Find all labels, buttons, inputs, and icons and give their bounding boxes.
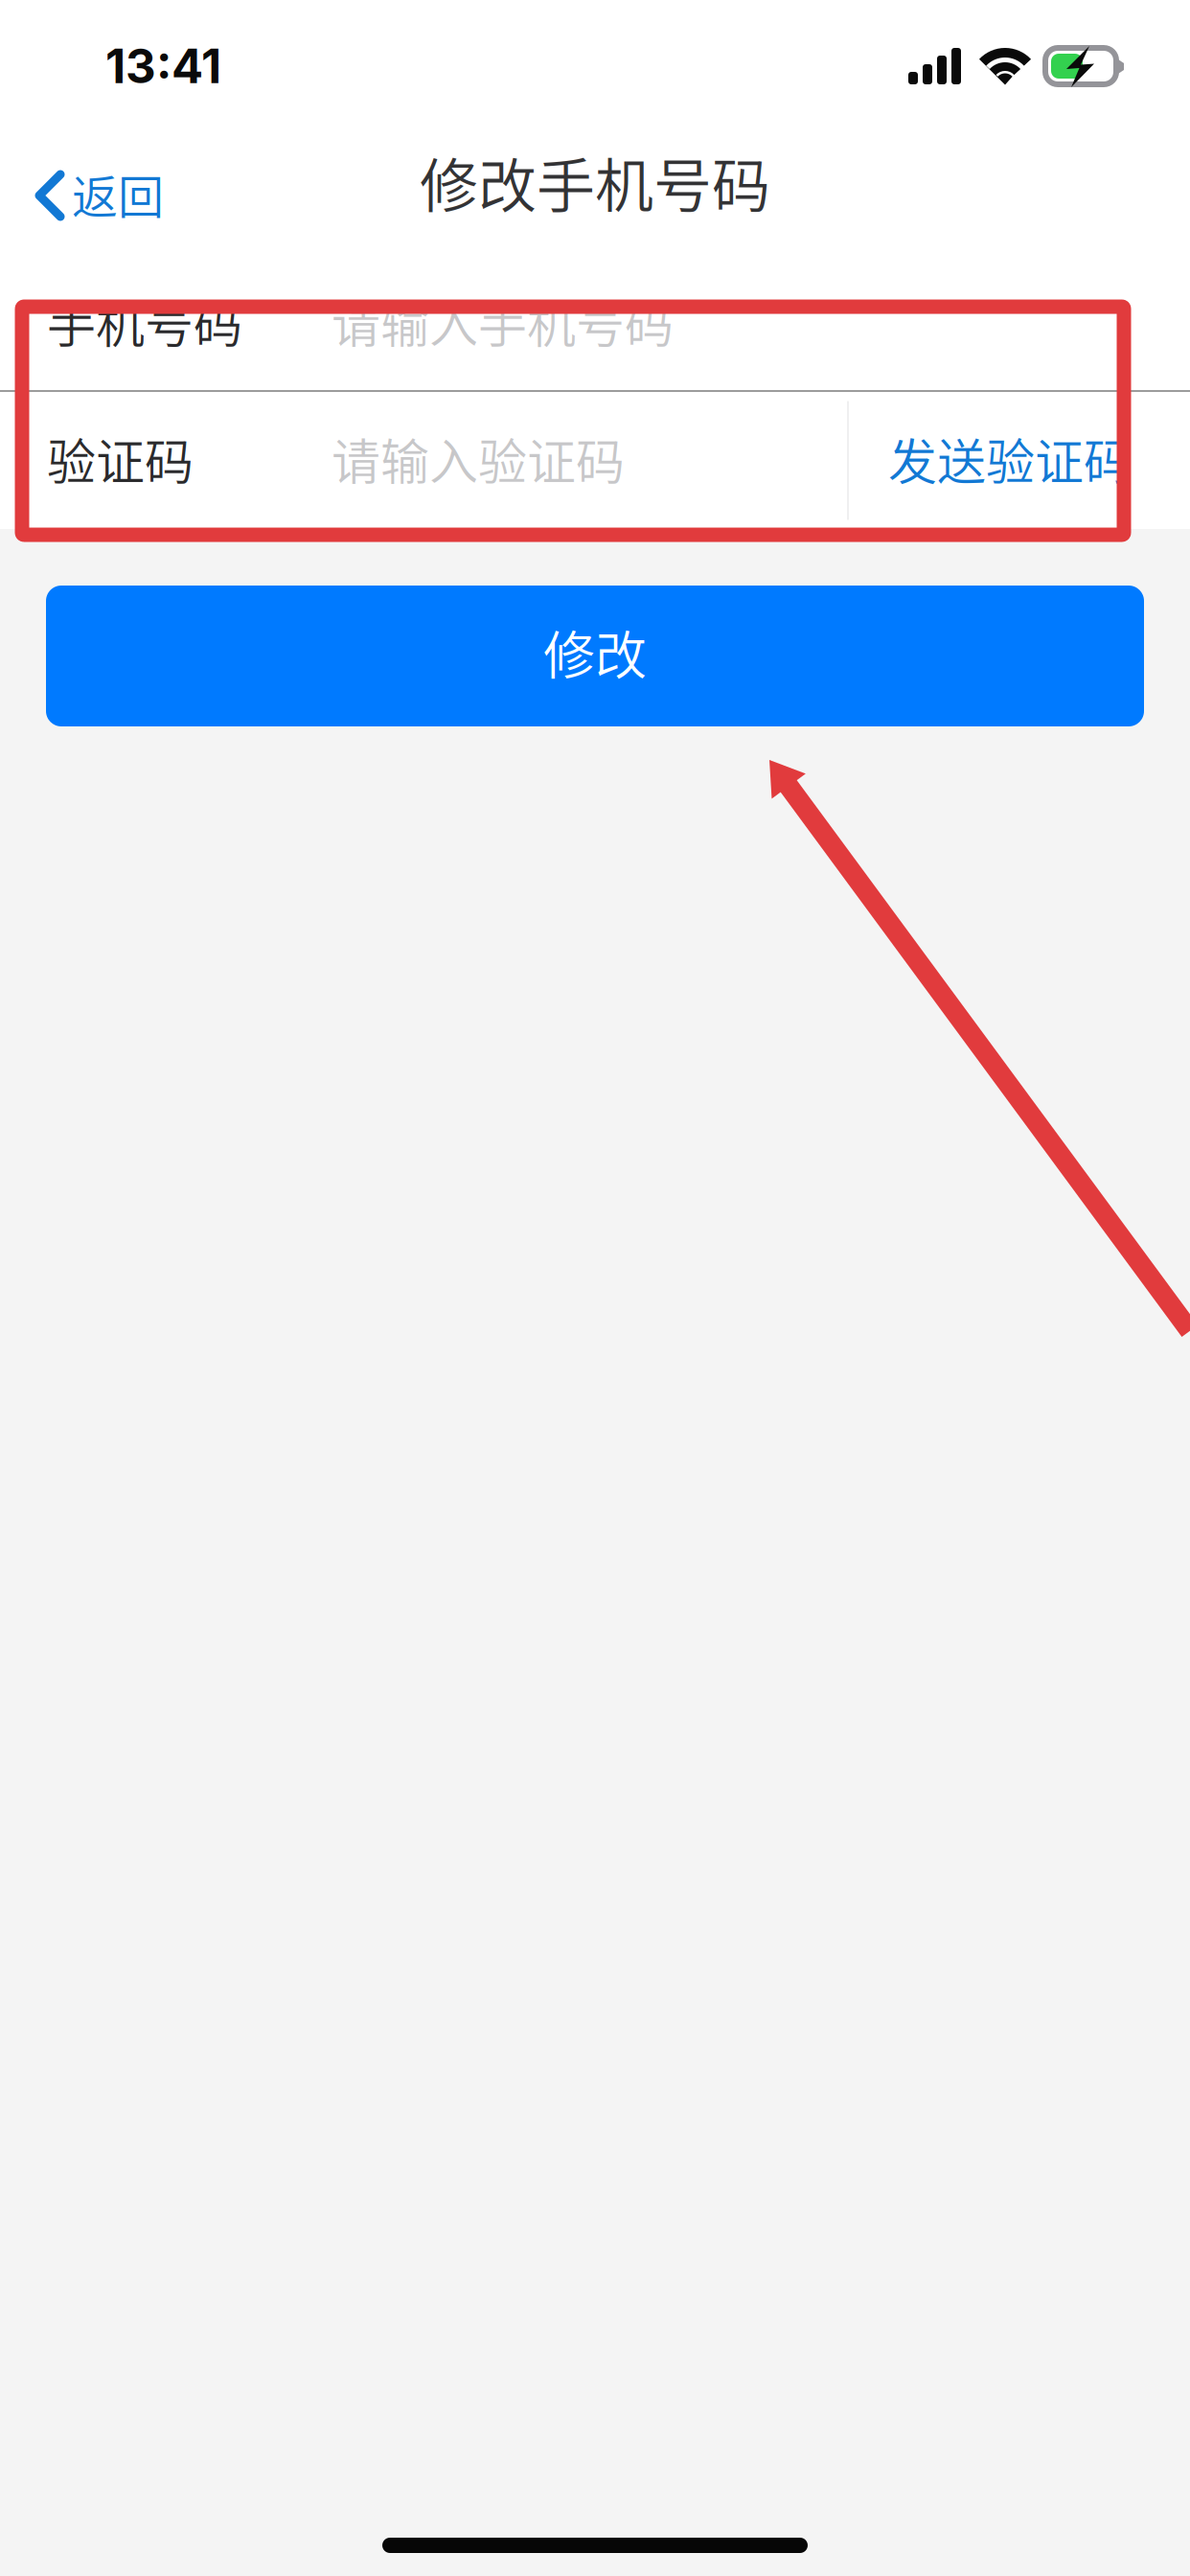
staticText: 返回 <box>72 160 164 227</box>
staticText: 修改 <box>543 615 647 690</box>
button[interactable]: 验证码 <box>0 392 847 529</box>
staticText: 手机号码 <box>47 286 242 357</box>
staticText: 发送验证码 <box>888 423 1133 494</box>
staticText: 验证码 <box>47 423 194 494</box>
button[interactable]: 发送验证码 <box>849 392 1190 529</box>
staticText: 13:41 <box>105 38 221 95</box>
staticText: 修改手机号码 <box>420 140 770 224</box>
button[interactable]: 返回 <box>0 143 189 240</box>
button[interactable]: 修改 <box>46 586 1144 726</box>
staticText: 请输入手机号码 <box>332 286 674 357</box>
button[interactable]: 手机号码 <box>0 257 1190 390</box>
staticText: 请输入验证码 <box>332 423 625 494</box>
